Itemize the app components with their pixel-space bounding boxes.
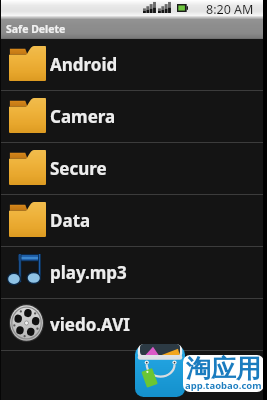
staticText: Android — [50, 53, 118, 76]
staticText: Secure — [50, 157, 107, 180]
button[interactable]: Data — [0, 195, 267, 247]
staticText: Camera — [50, 105, 116, 128]
staticText: Data — [50, 209, 91, 232]
button[interactable]: Android — [0, 39, 267, 91]
button[interactable]: Camera — [0, 91, 267, 143]
button[interactable]: Secure — [0, 143, 267, 195]
staticText: 淘应用 — [186, 355, 261, 384]
staticText: app.taobao.com — [185, 379, 262, 392]
staticText: Safe Delete — [6, 22, 66, 36]
staticText: play.mp3 — [50, 261, 127, 284]
button[interactable]: play.mp3 — [0, 247, 267, 299]
button[interactable]: viedo.AVI — [0, 299, 267, 351]
staticText: viedo.AVI — [50, 313, 130, 336]
staticText: 8:20 AM — [206, 1, 254, 18]
